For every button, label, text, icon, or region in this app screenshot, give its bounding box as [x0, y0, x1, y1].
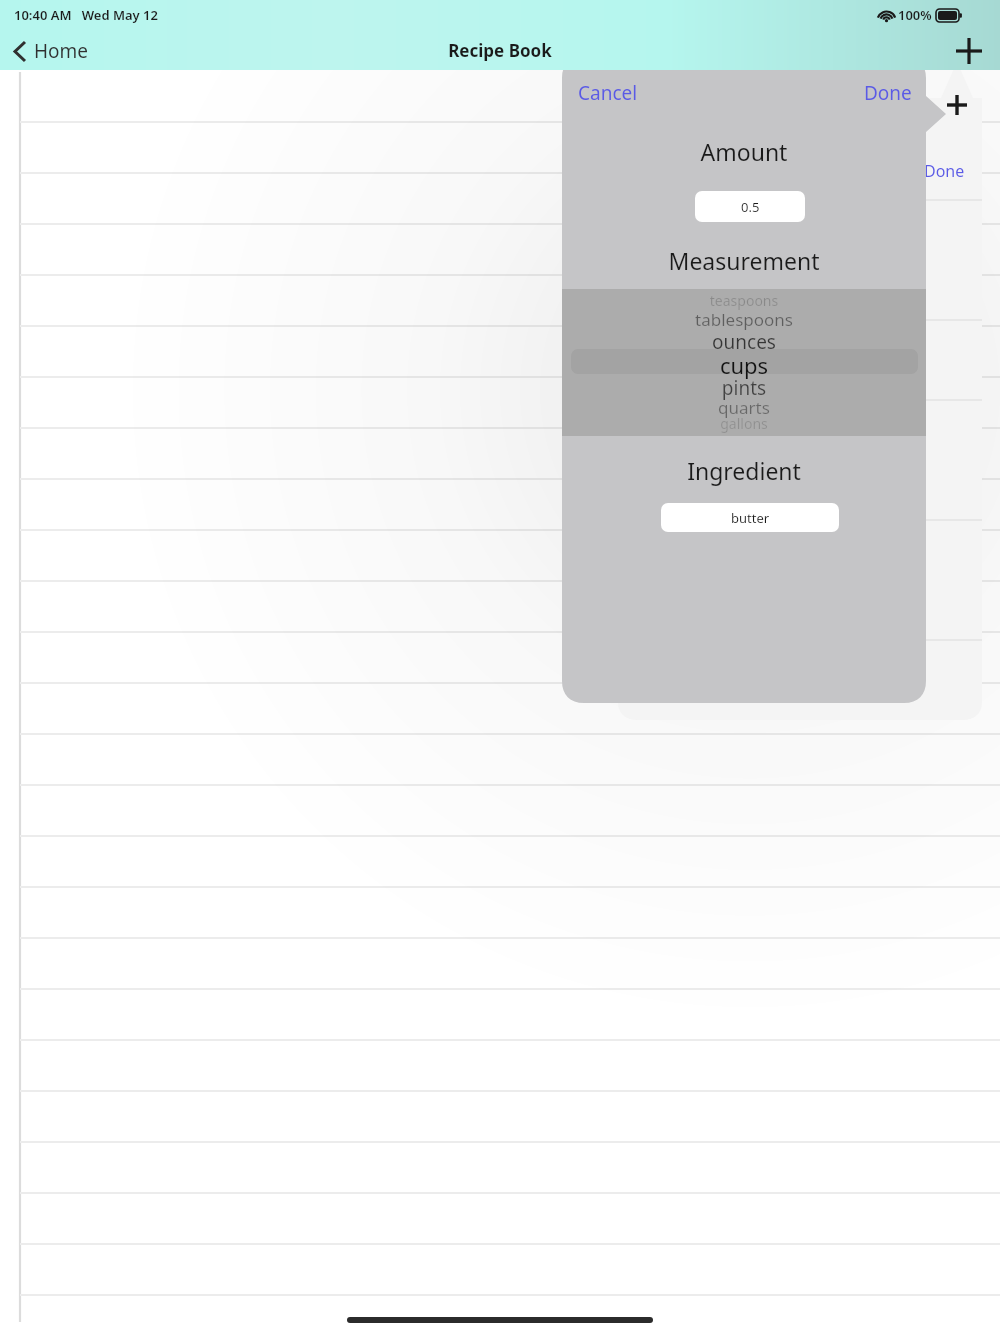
- staticText: Recipe Book: [0, 39, 1000, 62]
- button[interactable]: Cancel: [578, 80, 638, 106]
- staticText: Done: [864, 80, 912, 106]
- button[interactable]: butter: [661, 503, 839, 532]
- staticText: teaspoons: [562, 291, 926, 310]
- staticText: ounces: [562, 329, 926, 355]
- button[interactable]: Home: [14, 38, 89, 64]
- staticText: Done: [924, 160, 965, 182]
- staticText: 100%: [898, 6, 932, 24]
- button[interactable]: Done: [864, 80, 912, 106]
- staticText: Ingredient: [562, 455, 926, 486]
- button[interactable]: 0.5: [695, 191, 805, 222]
- staticText: pints: [562, 375, 926, 401]
- button[interactable]: Add: [948, 30, 990, 72]
- staticText: cups: [562, 350, 926, 380]
- staticText: Amount: [562, 136, 926, 167]
- staticText: butter: [731, 509, 770, 527]
- staticText: 10:40 AM Wed May 12: [14, 6, 158, 24]
- staticText: 0.5: [741, 198, 760, 216]
- staticText: Cancel: [578, 80, 638, 106]
- button[interactable]: Add ingredient: [938, 86, 976, 124]
- staticText: gallons: [562, 414, 926, 433]
- staticText: tablespoons: [562, 308, 926, 331]
- staticText: quarts: [562, 396, 926, 419]
- button[interactable]: Done: [924, 160, 965, 182]
- staticText: Home: [34, 38, 89, 64]
- staticText: Measurement: [562, 245, 926, 276]
